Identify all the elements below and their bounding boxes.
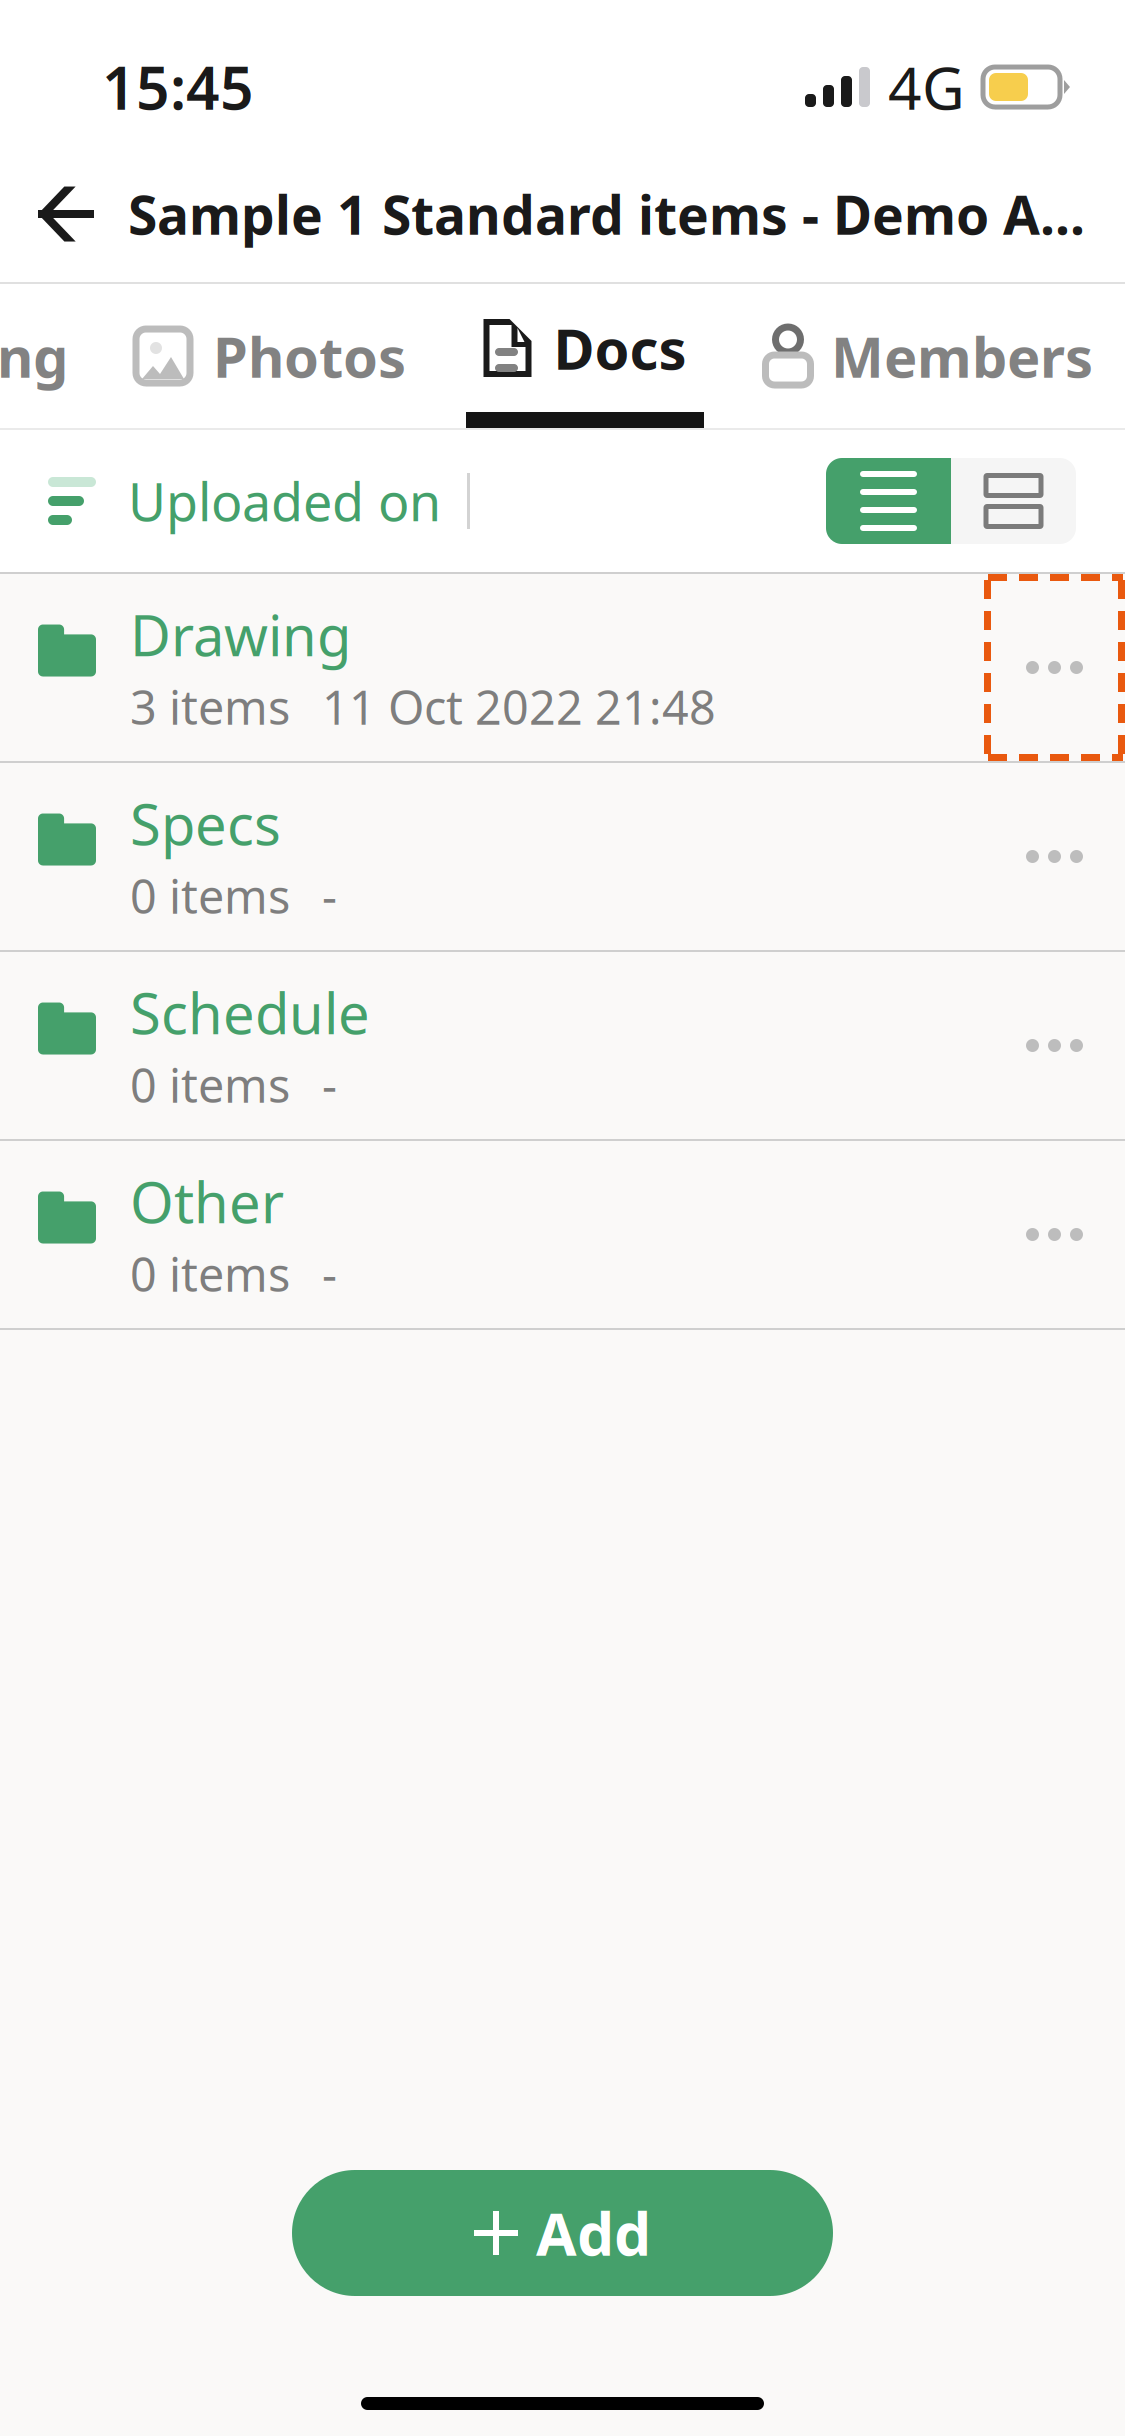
button[interactable]: Add xyxy=(292,2170,833,2296)
staticText: 15:45 xyxy=(102,48,254,126)
button[interactable]: Docs xyxy=(466,284,704,428)
staticText: Uploaded on xyxy=(128,466,441,536)
staticText: Specs xyxy=(130,786,281,861)
button[interactable]: Schedule xyxy=(0,952,1125,1139)
staticText: ng xyxy=(0,319,68,393)
button[interactable]: More options xyxy=(984,763,1125,950)
button[interactable]: Back xyxy=(0,186,128,241)
button[interactable]: Other xyxy=(0,1141,1125,1328)
staticText: - xyxy=(322,1243,337,1305)
staticText: Docs xyxy=(553,311,686,385)
button[interactable]: Uploaded on xyxy=(0,430,441,572)
button[interactable]: List view xyxy=(826,458,951,544)
staticText: Sample 1 Standard items - Demo A... xyxy=(128,179,1085,249)
button[interactable]: Drawing xyxy=(0,574,1125,761)
staticText: 0 items xyxy=(130,865,290,927)
staticText: Other xyxy=(130,1164,284,1239)
button[interactable]: Members xyxy=(764,284,1093,428)
staticText: 0 items xyxy=(130,1054,290,1116)
staticText: 0 items xyxy=(130,1243,290,1305)
button[interactable]: ng xyxy=(0,284,76,428)
button[interactable]: Card view xyxy=(951,458,1076,544)
staticText: Drawing xyxy=(130,597,351,672)
button[interactable]: More options xyxy=(984,1141,1125,1328)
staticText: Photos xyxy=(213,319,406,393)
staticText: 4G xyxy=(888,48,965,126)
staticText: 3 items xyxy=(130,676,290,738)
staticText: - xyxy=(322,1054,337,1116)
staticText: Schedule xyxy=(130,975,370,1050)
button[interactable]: Photos xyxy=(136,284,406,428)
button[interactable]: More options xyxy=(984,952,1125,1139)
button[interactable]: More options xyxy=(984,574,1125,761)
staticText: 11 Oct 2022 21:48 xyxy=(322,676,716,738)
button[interactable]: Specs xyxy=(0,763,1125,950)
staticText: Add xyxy=(536,2194,651,2272)
staticText: - xyxy=(322,865,337,927)
staticText: Members xyxy=(831,319,1093,393)
